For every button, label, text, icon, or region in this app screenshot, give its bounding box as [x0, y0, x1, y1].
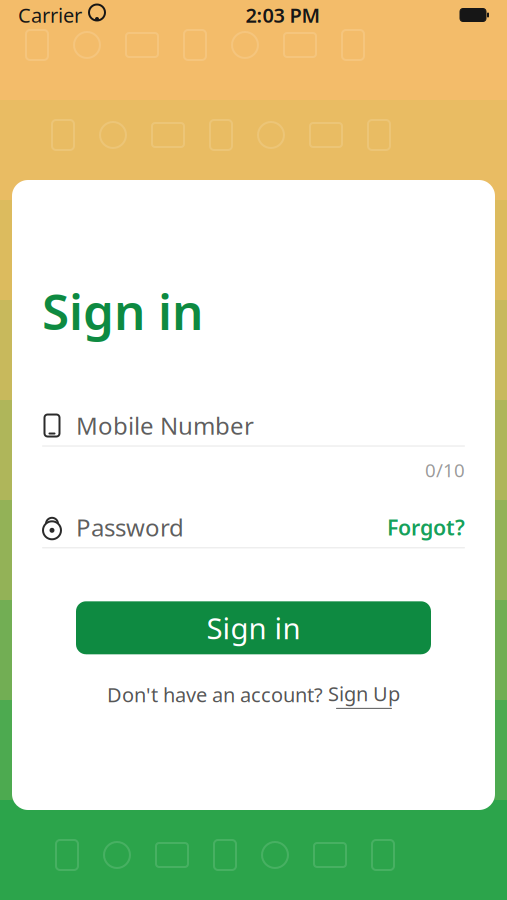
- button[interactable]: Mobile Number: [12, 405, 495, 446]
- staticText: Sign Up: [328, 680, 400, 707]
- staticText: Carrier: [18, 2, 82, 28]
- staticText: Mobile Number: [76, 410, 254, 441]
- staticText: Password: [76, 511, 184, 543]
- button[interactable]: Forgot?: [387, 513, 465, 541]
- staticText: Sign in: [42, 278, 203, 343]
- button[interactable]: Sign in: [76, 601, 431, 654]
- staticText: 0/10: [425, 457, 465, 482]
- staticText: Don't have an account?: [107, 681, 323, 708]
- button[interactable]: Don't have an account?: [107, 680, 400, 709]
- staticText: 2:03 PM: [245, 2, 320, 28]
- staticText: Forgot?: [387, 513, 465, 541]
- staticText: Sign in: [206, 608, 300, 647]
